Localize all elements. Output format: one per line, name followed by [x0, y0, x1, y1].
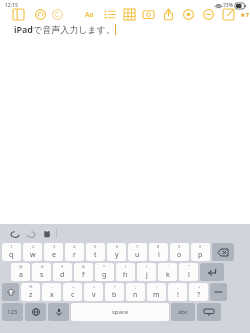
- button[interactable]: Undo: [33, 7, 48, 22]
- button[interactable]: 9: [170, 243, 189, 261]
- staticText: :: [156, 284, 158, 289]
- staticText: w: [30, 250, 36, 260]
- button[interactable]: ;: [126, 283, 145, 301]
- staticText: j: [146, 270, 148, 280]
- button[interactable]: Redo: [50, 7, 65, 22]
- staticText: r: [73, 250, 76, 260]
- button[interactable]: -: [42, 283, 61, 301]
- staticText: #: [41, 264, 44, 269]
- button[interactable]: Backspace: [212, 243, 234, 261]
- button[interactable]: #: [32, 263, 51, 281]
- staticText: ': [168, 264, 169, 269]
- staticText: +: [72, 284, 75, 289]
- button[interactable]: (: [116, 263, 135, 281]
- staticText: ★7: [240, 11, 249, 19]
- button[interactable]: Markup: [181, 7, 196, 22]
- button[interactable]: +: [63, 283, 82, 301]
- staticText: @: [19, 264, 23, 269]
- staticText: m: [153, 290, 160, 300]
- button[interactable]: ): [137, 263, 156, 281]
- button[interactable]: *: [95, 263, 114, 281]
- button[interactable]: 2: [23, 243, 42, 261]
- button[interactable]: %: [21, 283, 40, 301]
- staticText: *: [103, 264, 106, 269]
- staticText: 2: [32, 244, 35, 249]
- staticText: 0: [199, 244, 202, 249]
- button[interactable]: Remove: [201, 7, 216, 22]
- button[interactable]: 1: [2, 243, 21, 261]
- button[interactable]: 7: [128, 243, 147, 261]
- staticText: ?: [197, 290, 201, 300]
- staticText: c: [71, 290, 75, 300]
- button[interactable]: 5: [86, 243, 105, 261]
- button[interactable]: +: [189, 283, 208, 301]
- staticText: ,: [177, 284, 179, 289]
- button[interactable]: Sidebar: [11, 7, 26, 22]
- staticText: 7: [136, 244, 139, 249]
- staticText: d: [60, 270, 65, 280]
- staticText: &: [82, 264, 85, 269]
- button[interactable]: Shift: [2, 283, 19, 301]
- staticText: b: [112, 290, 117, 300]
- button[interactable]: Dictation: [48, 303, 69, 321]
- button[interactable]: 123: [2, 303, 23, 321]
- button[interactable]: Undo: [8, 227, 21, 240]
- button[interactable]: ': [158, 263, 177, 281]
- staticText: 3: [53, 244, 56, 249]
- staticText: 8: [157, 244, 160, 249]
- staticText: q: [9, 250, 14, 260]
- button[interactable]: :: [147, 283, 166, 301]
- staticText: (: [125, 264, 127, 269]
- button[interactable]: Compose: [221, 7, 236, 22]
- staticText: h: [123, 270, 128, 280]
- staticText: k: [166, 270, 170, 280]
- staticText: a: [19, 270, 23, 280]
- button[interactable]: Redo: [24, 227, 37, 240]
- button[interactable]: ": [179, 263, 198, 281]
- button[interactable]: Share: [161, 7, 176, 22]
- staticText: z: [29, 290, 33, 300]
- button[interactable]: ,: [168, 283, 187, 301]
- button[interactable]: Pin badge: [238, 8, 250, 22]
- button[interactable]: 3: [44, 243, 63, 261]
- button[interactable]: /: [105, 283, 124, 301]
- staticText: g: [102, 270, 107, 280]
- button[interactable]: Shift right: [210, 283, 227, 301]
- button[interactable]: 4: [65, 243, 84, 261]
- staticText: ): [146, 264, 148, 269]
- button[interactable]: abc: [171, 303, 195, 321]
- button[interactable]: Camera: [141, 7, 156, 22]
- button[interactable]: Next keyboard: [25, 303, 46, 321]
- button[interactable]: 8: [149, 243, 168, 261]
- button[interactable]: Table: [122, 7, 137, 22]
- staticText: o: [177, 250, 182, 260]
- button[interactable]: space: [71, 303, 169, 321]
- staticText: =: [93, 284, 96, 289]
- staticText: y: [115, 250, 119, 260]
- button[interactable]: &: [74, 263, 93, 281]
- staticText: t: [94, 250, 97, 260]
- button[interactable]: @: [11, 263, 30, 281]
- button[interactable]: Checklist: [102, 7, 117, 22]
- staticText: -: [51, 284, 53, 289]
- button[interactable]: $: [53, 263, 72, 281]
- button[interactable]: Paste: [40, 227, 53, 240]
- button[interactable]: 0: [191, 243, 210, 261]
- staticText: +: [198, 284, 201, 289]
- button[interactable]: Hide keyboard: [197, 303, 221, 321]
- button[interactable]: Return: [200, 263, 224, 281]
- staticText: iPadで音声入力します。: [14, 23, 115, 35]
- staticText: abc: [178, 308, 188, 316]
- staticText: n: [133, 290, 138, 300]
- staticText: 9: [178, 244, 181, 249]
- staticText: s: [40, 270, 44, 280]
- staticText: %: [29, 284, 33, 289]
- staticText: 4: [73, 244, 76, 249]
- staticText: 6: [116, 244, 119, 249]
- staticText: $: [61, 264, 64, 269]
- staticText: x: [50, 290, 54, 300]
- staticText: 12:15: [5, 2, 18, 9]
- button[interactable]: 6: [107, 243, 126, 261]
- button[interactable]: =: [84, 283, 103, 301]
- button[interactable]: Text format: [82, 7, 97, 22]
